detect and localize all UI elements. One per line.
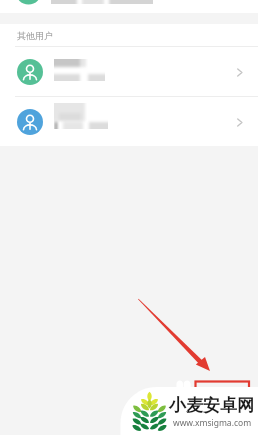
staticText: 小麦安卓网: [169, 395, 254, 416]
staticText: 其他用户: [17, 30, 53, 41]
button[interactable]: [0, 0, 258, 13]
staticText: www.xmsigma.com: [173, 417, 252, 429]
button[interactable]: Open user details: [0, 97, 258, 146]
other: Open user details: [228, 111, 250, 133]
button[interactable]: Open user details: [0, 47, 258, 96]
other: Open user details: [228, 61, 250, 83]
